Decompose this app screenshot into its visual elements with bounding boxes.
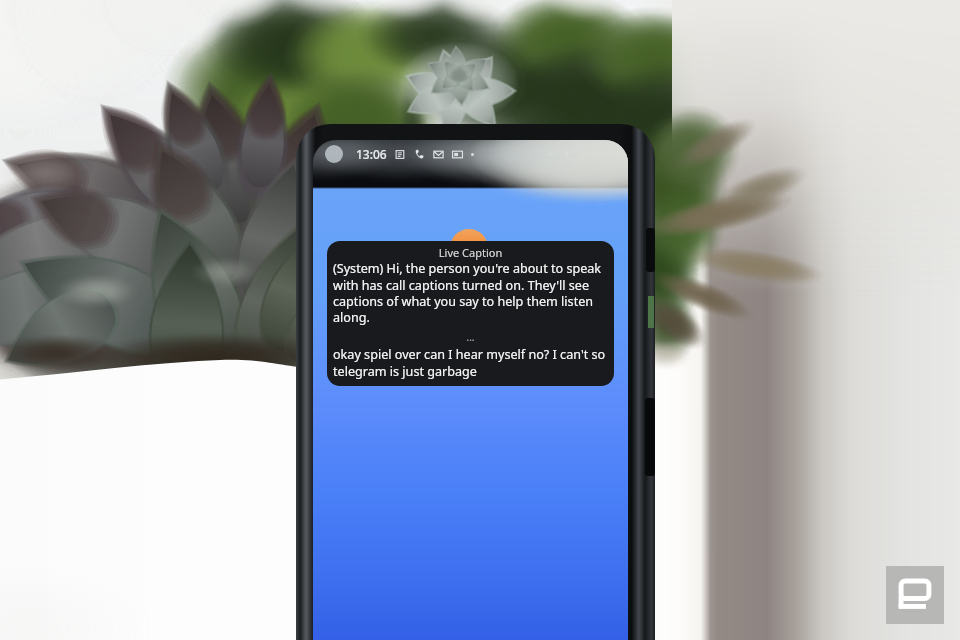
staticText: Live Caption — [333, 245, 608, 260]
staticText: 13:06 — [356, 146, 387, 162]
staticText: (System) Hi, the person you're about to … — [333, 260, 608, 325]
staticText: ... — [333, 330, 608, 344]
staticText: okay spiel over can I hear myself no? I … — [333, 346, 608, 379]
other: Engadget logo — [886, 566, 944, 624]
button[interactable]: Live Caption — [327, 241, 614, 386]
